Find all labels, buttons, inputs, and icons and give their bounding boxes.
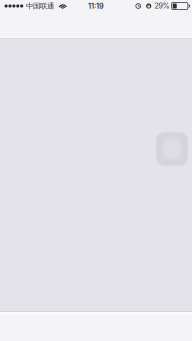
staticText: 29% [155,2,170,10]
staticText: 中国联通 [26,1,54,11]
staticText: 11:19 [88,2,104,10]
